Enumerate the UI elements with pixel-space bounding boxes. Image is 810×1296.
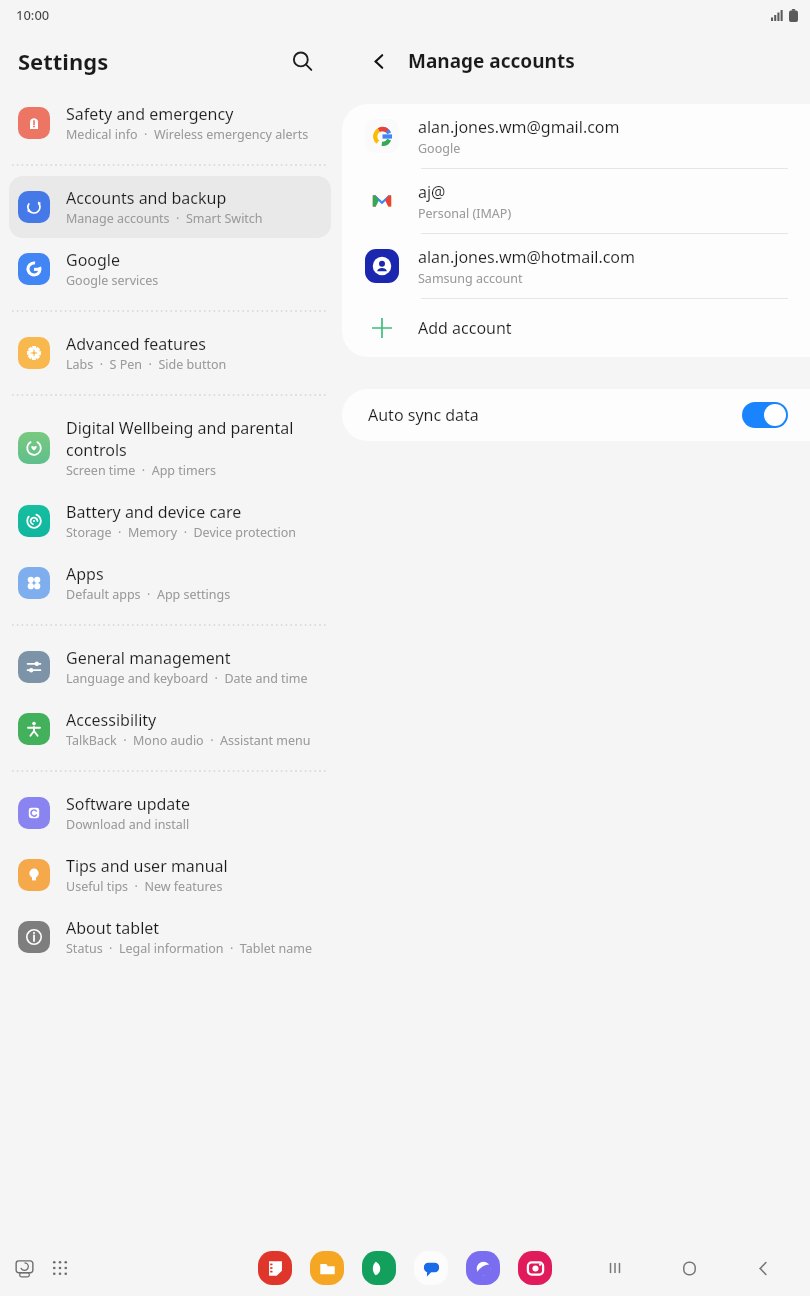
button[interactable]: Apps bbox=[9, 552, 331, 614]
staticText: Language and keyboard · Date and time bbox=[66, 670, 308, 687]
button[interactable]: Search bbox=[282, 41, 322, 81]
button[interactable]: Back bbox=[362, 44, 396, 78]
button[interactable]: aj@ bbox=[342, 169, 810, 234]
staticText: Useful tips · New features bbox=[66, 878, 223, 895]
button[interactable]: Accounts and backup bbox=[9, 176, 331, 238]
staticText: Google services bbox=[66, 272, 159, 289]
staticText: Software update bbox=[66, 793, 191, 815]
button[interactable]: msg bbox=[414, 1251, 448, 1285]
button[interactable]: Battery and device care bbox=[9, 490, 331, 552]
staticText: Default apps · App settings bbox=[66, 586, 231, 603]
staticText: Screen time · App timers bbox=[66, 462, 216, 479]
button[interactable]: Safety and emergency bbox=[9, 92, 331, 154]
staticText: Advanced features bbox=[66, 333, 206, 355]
staticText: Status · Legal information · Tablet name bbox=[66, 940, 312, 957]
staticText: Digital Wellbeing and parental controls bbox=[66, 417, 321, 461]
button[interactable]: Back bbox=[746, 1251, 780, 1285]
button[interactable]: cam bbox=[518, 1251, 552, 1285]
staticText: Google bbox=[66, 249, 121, 271]
staticText: Personal (IMAP) bbox=[418, 205, 512, 222]
staticText: Medical info · Wireless emergency alerts bbox=[66, 126, 309, 143]
staticText: Labs · S Pen · Side button bbox=[66, 356, 227, 373]
staticText: Download and install bbox=[66, 816, 190, 833]
staticText: Auto sync data bbox=[368, 404, 742, 426]
button[interactable]: phone bbox=[362, 1251, 396, 1285]
staticText: Storage · Memory · Device protection bbox=[66, 524, 297, 541]
staticText: Apps bbox=[66, 563, 104, 585]
button[interactable]: General management bbox=[9, 636, 331, 698]
staticText: Battery and device care bbox=[66, 501, 242, 523]
button[interactable]: alan.jones.wm@gmail.com bbox=[342, 104, 810, 169]
staticText: Google bbox=[418, 140, 461, 157]
staticText: Tips and user manual bbox=[66, 855, 228, 877]
button[interactable]: notes bbox=[258, 1251, 292, 1285]
button[interactable]: Recent apps bbox=[8, 1252, 40, 1284]
staticText: Add account bbox=[418, 317, 512, 339]
staticText: About tablet bbox=[66, 917, 160, 939]
staticText: Settings bbox=[18, 46, 109, 76]
button[interactable]: files bbox=[310, 1251, 344, 1285]
staticText: TalkBack · Mono audio · Assistant menu bbox=[66, 732, 311, 749]
button[interactable]: Google bbox=[9, 238, 331, 300]
button[interactable]: Software update bbox=[9, 782, 331, 844]
staticText: Manage accounts · Smart Switch bbox=[66, 210, 263, 227]
staticText: Manage accounts bbox=[408, 48, 575, 74]
button[interactable]: Accessibility bbox=[9, 698, 331, 760]
staticText: General management bbox=[66, 647, 231, 669]
button[interactable]: About tablet bbox=[9, 906, 331, 968]
button[interactable]: Recents bbox=[598, 1251, 632, 1285]
staticText: Safety and emergency bbox=[66, 103, 234, 125]
button[interactable]: Add account bbox=[342, 299, 810, 357]
staticText: alan.jones.wm@hotmail.com bbox=[418, 246, 635, 268]
button[interactable]: Digital Wellbeing and parental controls bbox=[9, 406, 331, 490]
button[interactable]: Home bbox=[672, 1251, 706, 1285]
button[interactable]: internet bbox=[466, 1251, 500, 1285]
button[interactable]: All apps bbox=[44, 1252, 76, 1284]
staticText: Samsung account bbox=[418, 270, 523, 287]
staticText: alan.jones.wm@gmail.com bbox=[418, 116, 620, 138]
button[interactable]: Auto sync data bbox=[342, 389, 810, 441]
staticText: Accounts and backup bbox=[66, 187, 227, 209]
staticText: aj@ bbox=[418, 181, 446, 203]
button[interactable]: Tips and user manual bbox=[9, 844, 331, 906]
staticText: Accessibility bbox=[66, 709, 157, 731]
staticText: 10:00 bbox=[16, 6, 50, 24]
button[interactable]: alan.jones.wm@hotmail.com bbox=[342, 234, 810, 299]
button[interactable]: Advanced features bbox=[9, 322, 331, 384]
